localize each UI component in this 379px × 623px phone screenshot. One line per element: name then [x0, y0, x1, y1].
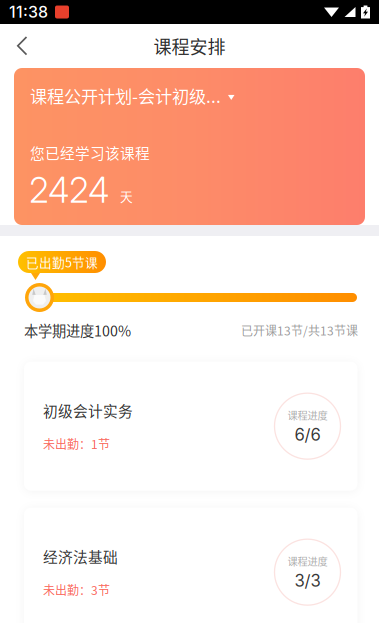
button[interactable]: Back [0, 24, 44, 68]
staticText: 课程进度 [287, 554, 327, 568]
staticText: 初级会计实务 [43, 400, 133, 421]
staticText: 课程进度 [287, 408, 327, 422]
staticText: 课程公开计划-会计初级... [30, 83, 221, 108]
staticText: 3/3 [294, 570, 320, 591]
staticText: 经济法基础 [43, 546, 118, 567]
staticText: 2424 [29, 169, 109, 211]
button[interactable]: 初级会计实务 [24, 362, 357, 491]
staticText: 11:38 [9, 2, 48, 22]
staticText: 课程安排 [153, 33, 225, 59]
button[interactable]: 经济法基础 [24, 508, 357, 623]
staticText: 天 [120, 187, 133, 205]
button[interactable]: 课程公开计划-会计初级... [30, 83, 351, 108]
staticText: 已出勤5节课 [26, 253, 98, 271]
staticText: 未出勤：3节 [43, 581, 110, 598]
staticText: 您已经学习该课程 [30, 142, 150, 163]
staticText: 本学期进度100% [24, 320, 131, 341]
staticText: 6/6 [294, 424, 320, 445]
staticText: 已开课13节/共13节课 [241, 322, 358, 339]
staticText: 未出勤：1节 [43, 435, 110, 452]
